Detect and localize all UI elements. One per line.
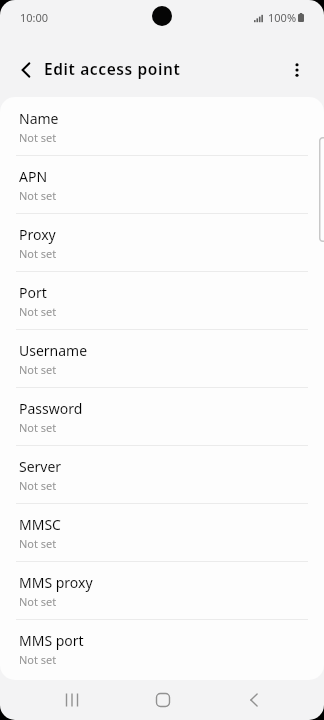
staticText: Not set bbox=[19, 594, 57, 609]
staticText: Not set bbox=[19, 304, 57, 319]
staticText: Not set bbox=[19, 130, 57, 145]
button[interactable]: Back bbox=[232, 678, 276, 720]
staticText: APN bbox=[19, 167, 48, 186]
staticText: Edit access point bbox=[44, 58, 181, 79]
staticText: Not set bbox=[19, 362, 57, 377]
staticText: Not set bbox=[19, 246, 57, 261]
button[interactable]: APN bbox=[0, 155, 324, 213]
staticText: 100% bbox=[268, 10, 297, 25]
staticText: Not set bbox=[19, 536, 57, 551]
staticText: Password bbox=[19, 399, 83, 418]
button[interactable]: Proxy bbox=[0, 213, 324, 271]
staticText: Server bbox=[19, 457, 62, 476]
staticText: MMS proxy bbox=[19, 573, 93, 592]
button[interactable]: More options bbox=[279, 52, 315, 88]
staticText: Not set bbox=[19, 420, 57, 435]
button[interactable]: MMS proxy bbox=[0, 561, 324, 619]
button[interactable]: Navigate up bbox=[8, 52, 44, 88]
button[interactable]: MMSC bbox=[0, 503, 324, 561]
staticText: Not set bbox=[19, 478, 57, 493]
staticText: MMSC bbox=[19, 515, 61, 534]
button[interactable]: Username bbox=[0, 329, 324, 387]
staticText: Not set bbox=[19, 652, 57, 667]
button[interactable]: Home bbox=[141, 678, 185, 720]
staticText: Proxy bbox=[19, 225, 56, 244]
button[interactable]: Name bbox=[0, 97, 324, 155]
staticText: MMS port bbox=[19, 631, 84, 650]
button[interactable]: Recent apps bbox=[50, 678, 94, 720]
button[interactable]: Password bbox=[0, 387, 324, 445]
staticText: Port bbox=[19, 283, 47, 302]
staticText: Not set bbox=[19, 188, 57, 203]
button[interactable]: MMS port bbox=[0, 619, 324, 677]
staticText: Name bbox=[19, 109, 59, 128]
button[interactable]: Server bbox=[0, 445, 324, 503]
button[interactable]: Port bbox=[0, 271, 324, 329]
staticText: Username bbox=[19, 341, 88, 360]
staticText: 10:00 bbox=[20, 10, 49, 25]
